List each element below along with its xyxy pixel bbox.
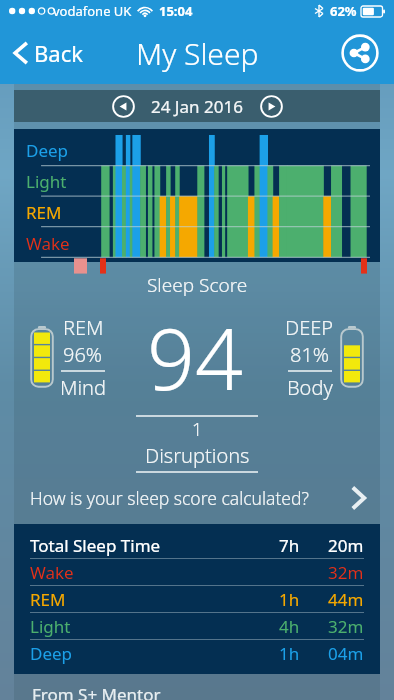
staticText: vodafone UK	[53, 2, 132, 20]
staticText: Deep	[26, 139, 69, 162]
staticText: 94	[147, 300, 243, 414]
staticText: Body	[287, 374, 333, 401]
staticText: My Sleep	[136, 33, 259, 74]
staticText: Sleep Score	[147, 272, 248, 298]
staticText: 04m	[328, 642, 364, 665]
staticText: 81%	[290, 341, 330, 368]
staticText: Back	[34, 38, 83, 68]
staticText: 24 Jan 2016	[151, 95, 243, 118]
staticText: 20m	[328, 534, 364, 557]
staticText: 1	[192, 417, 203, 442]
button[interactable]: Share	[338, 31, 382, 75]
staticText: Wake	[30, 561, 74, 584]
staticText: Mind	[60, 374, 106, 401]
staticText: From S+ Mentor	[32, 683, 161, 700]
button[interactable]: Next day	[259, 94, 283, 118]
staticText: DEEP	[285, 314, 334, 341]
staticText: Light	[26, 170, 67, 193]
staticText: 4h	[279, 615, 300, 638]
button[interactable]: Back	[10, 32, 87, 74]
staticText: How is your sleep score calculated?	[30, 486, 309, 510]
staticText: Wake	[26, 232, 70, 255]
staticText: 1h	[279, 588, 300, 611]
staticText: Total Sleep Time	[30, 534, 161, 557]
staticText: 32m	[328, 561, 364, 584]
button[interactable]: How is your sleep score calculated?	[14, 479, 380, 517]
staticText: 15:04	[159, 2, 193, 20]
staticText: 7h	[279, 534, 300, 557]
staticText: REM	[63, 314, 104, 341]
staticText: Deep	[30, 642, 73, 665]
staticText: REM	[30, 588, 66, 611]
staticText: 32m	[328, 615, 364, 638]
button[interactable]: Previous day	[111, 94, 135, 118]
staticText: Disruptions	[145, 442, 250, 469]
staticText: 1h	[279, 642, 300, 665]
staticText: REM	[26, 201, 62, 224]
staticText: 96%	[63, 341, 103, 368]
staticText: 44m	[328, 588, 364, 611]
staticText: 62%	[330, 2, 357, 20]
staticText: Light	[30, 615, 71, 638]
